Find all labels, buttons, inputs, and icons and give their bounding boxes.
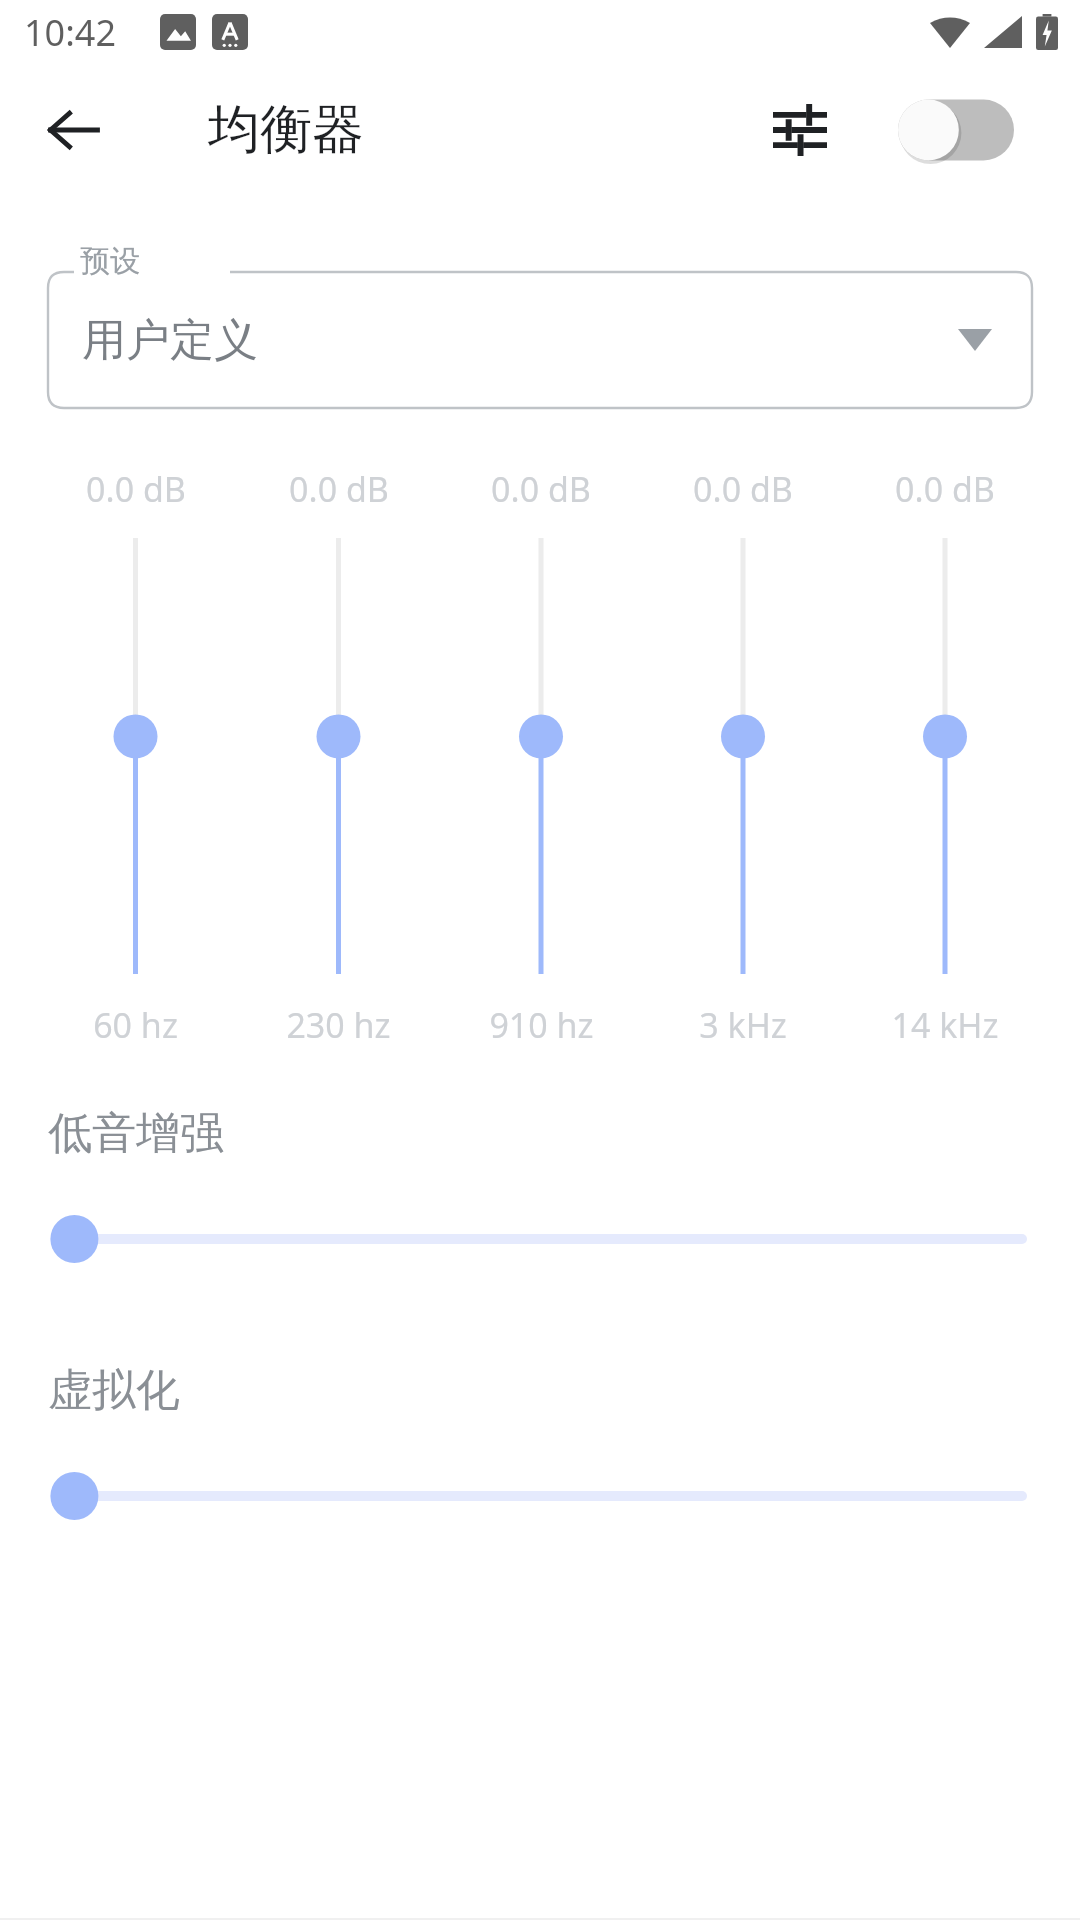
staticText: 3 kHz [699, 1002, 787, 1048]
staticText: 用户定义 [82, 313, 258, 368]
button[interactable] [48, 1207, 1032, 1271]
staticText: 910 hz [489, 1002, 594, 1048]
button[interactable] [34, 538, 237, 974]
button[interactable] [48, 1464, 1032, 1528]
button[interactable] [642, 538, 844, 974]
button[interactable]: Advanced settings [752, 82, 848, 178]
button[interactable] [440, 538, 642, 974]
staticText: 低音增强 [48, 1106, 224, 1161]
staticText: 0.0 dB [895, 466, 995, 512]
staticText: 均衡器 [208, 97, 364, 163]
button[interactable] [237, 538, 440, 974]
staticText: 预设 [80, 242, 140, 280]
staticText: 14 kHz [891, 1002, 999, 1048]
staticText: 230 hz [286, 1002, 391, 1048]
button[interactable]: 预设 [48, 258, 1032, 408]
button[interactable]: Enable equalizer [886, 82, 1026, 178]
staticText: 0.0 dB [86, 466, 186, 512]
staticText: 虚拟化 [48, 1363, 180, 1418]
button[interactable] [844, 538, 1046, 974]
staticText: 60 hz [93, 1002, 178, 1048]
staticText: 0.0 dB [491, 466, 591, 512]
staticText: 0.0 dB [693, 466, 793, 512]
staticText: 0.0 dB [289, 466, 389, 512]
staticText: 10:42 [24, 8, 117, 57]
button[interactable]: Back [26, 82, 122, 178]
